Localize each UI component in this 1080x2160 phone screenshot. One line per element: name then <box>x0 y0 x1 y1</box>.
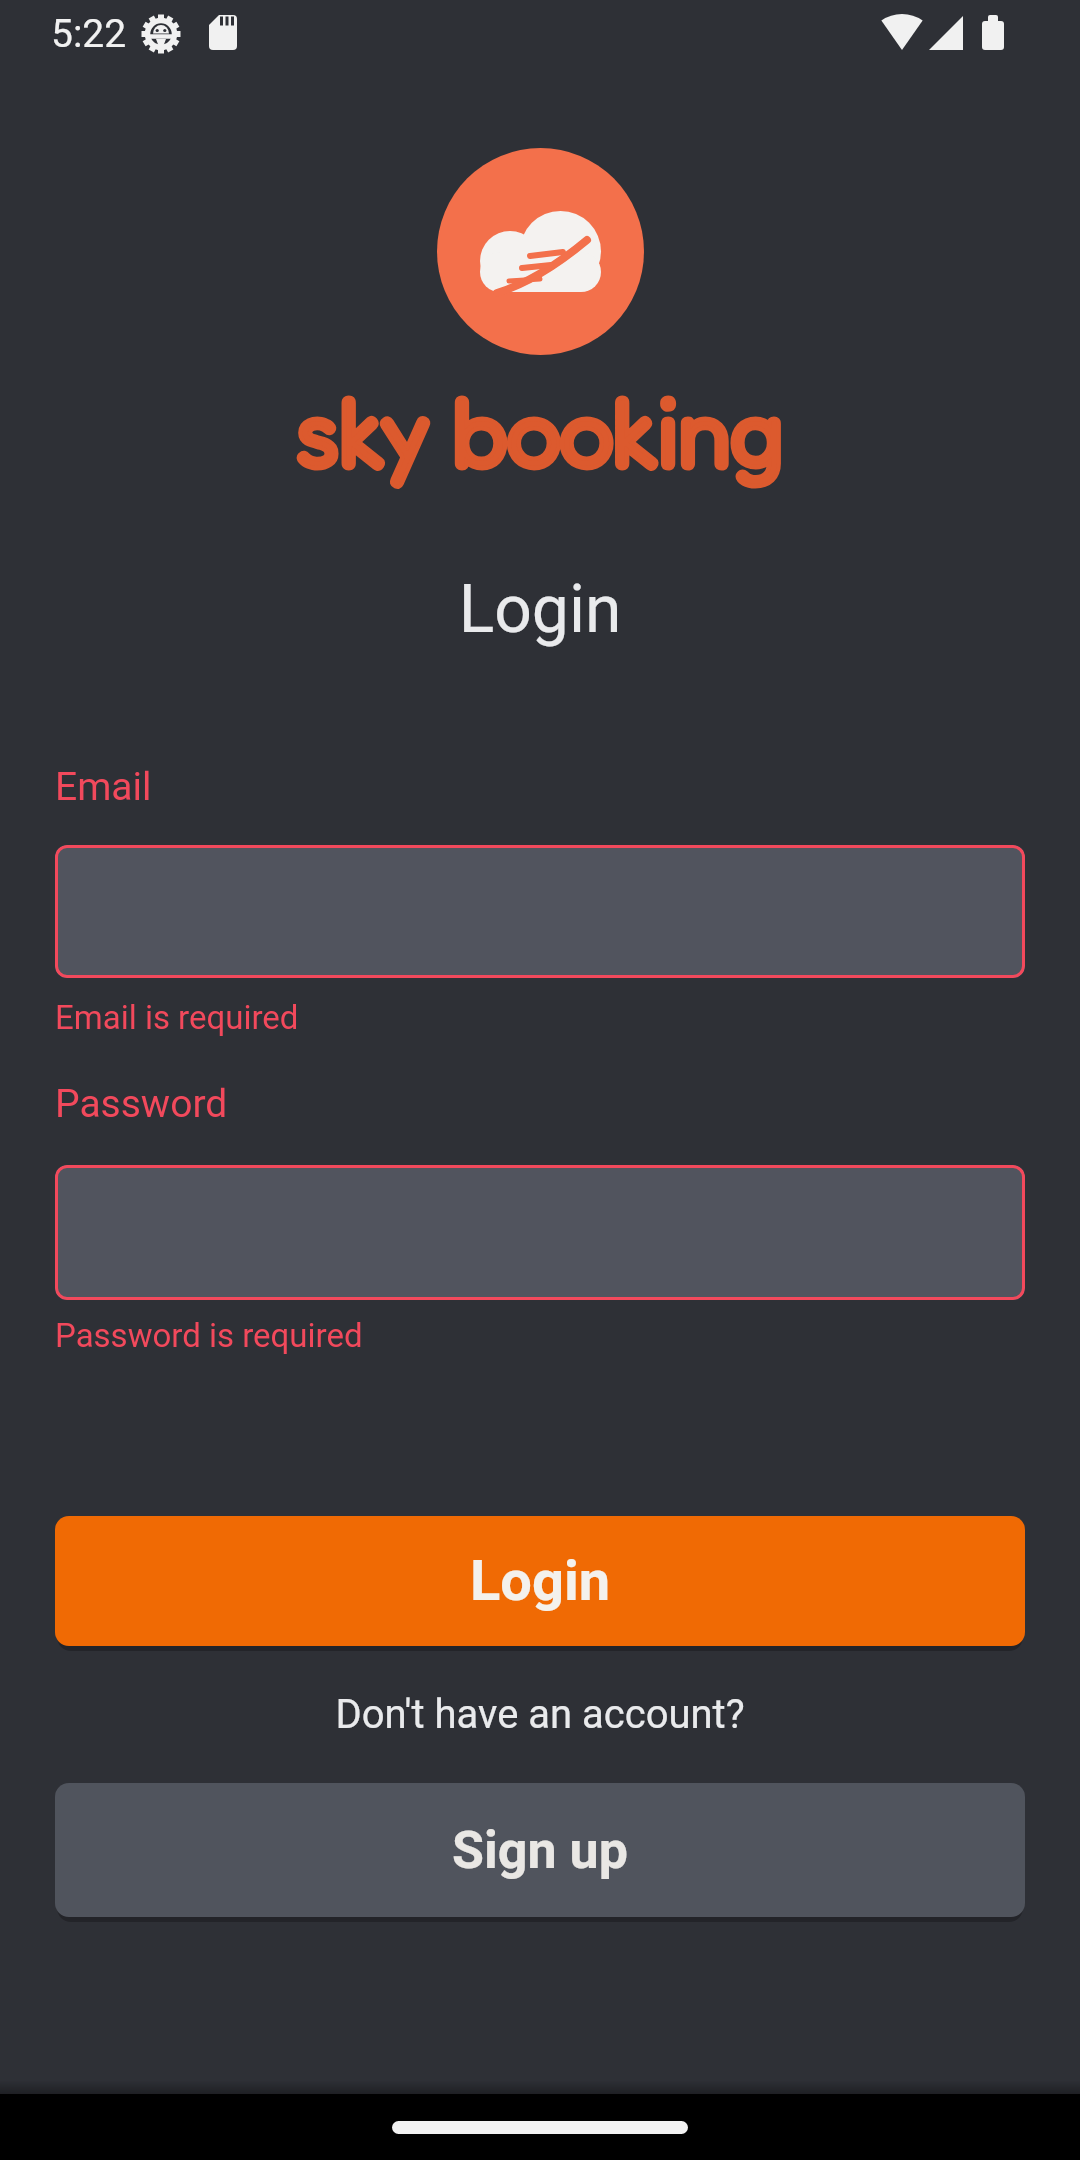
staticText: Don't have an account? <box>0 1691 1080 1738</box>
staticText: sky booking <box>0 373 1080 487</box>
staticText: Email <box>55 764 152 810</box>
staticText: Password is required <box>55 1316 363 1355</box>
staticText: Login <box>470 1548 611 1614</box>
button[interactable] <box>392 2121 688 2134</box>
button[interactable]: Login <box>55 1516 1025 1646</box>
button[interactable] <box>55 1165 1025 1300</box>
staticText: sky booking <box>0 373 1080 487</box>
staticText: Email is required <box>55 998 299 1037</box>
staticText: 5:22 <box>51 11 127 57</box>
button[interactable]: Sign up <box>55 1783 1025 1917</box>
button[interactable] <box>55 845 1025 978</box>
staticText: Password <box>55 1081 228 1127</box>
staticText: Sign up <box>452 1820 628 1881</box>
staticText: Login <box>0 571 1080 648</box>
